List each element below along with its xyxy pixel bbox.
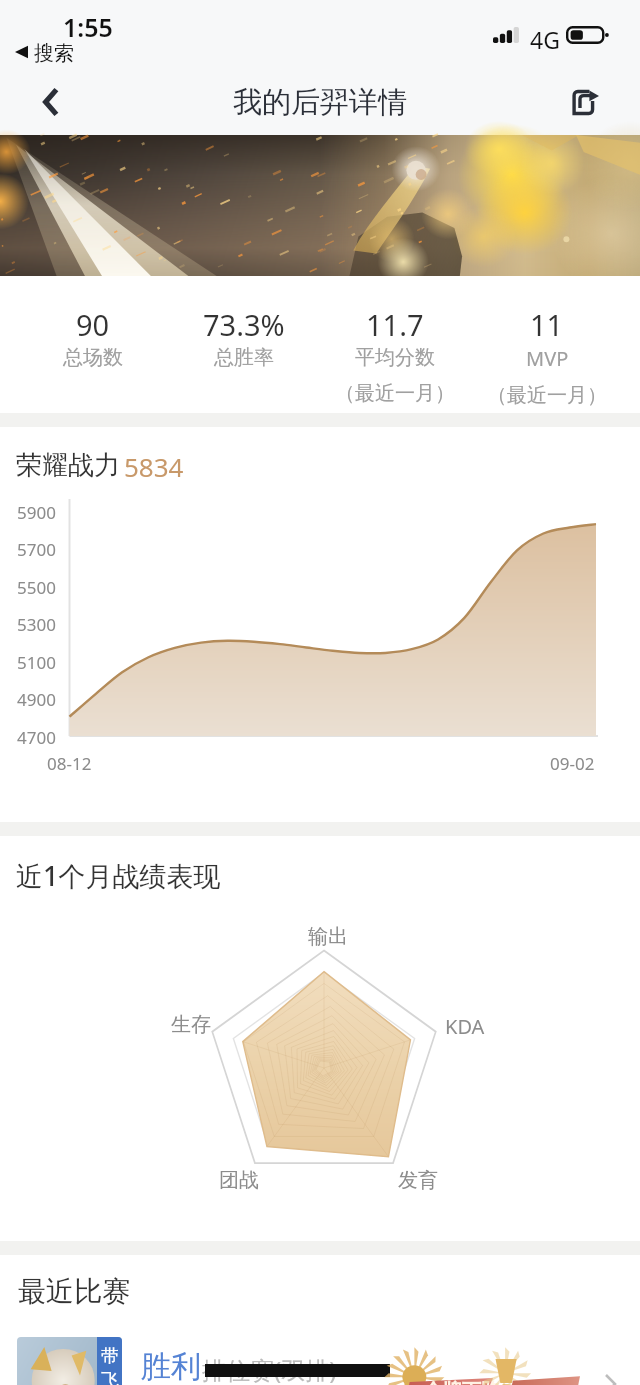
staticText: （最近一月） — [335, 381, 455, 406]
button[interactable]: Share — [558, 75, 614, 129]
staticText: 发育 — [398, 1168, 438, 1193]
staticText: 胜利 — [141, 1348, 201, 1385]
staticText: 5100 — [17, 651, 56, 674]
staticText: KDA — [445, 1013, 485, 1040]
staticText: 73.3% — [203, 305, 285, 344]
staticText: 5900 — [17, 501, 56, 524]
staticText: 总场数 — [63, 345, 123, 370]
staticText: 排位赛(双排) — [202, 1353, 337, 1385]
staticText: 近1个月战绩表现 — [16, 857, 221, 894]
staticText: 我的后羿详情 — [233, 84, 407, 121]
staticText: 5300 — [17, 613, 56, 636]
staticText: 5500 — [17, 576, 56, 599]
staticText: 生存 — [171, 1012, 211, 1037]
staticText: 团战 — [219, 1168, 259, 1193]
staticText: 平均分数 — [355, 345, 435, 370]
staticText: 5834 — [124, 449, 184, 484]
staticText: 90 — [76, 305, 110, 344]
other: Open match details — [604, 1373, 617, 1385]
staticText: 总胜率 — [214, 345, 274, 370]
button[interactable]: 11.7 — [319, 276, 471, 413]
staticText: MVP — [524, 1378, 569, 1385]
staticText: 金牌下路 — [424, 1379, 500, 1385]
button[interactable]: 73.3% — [168, 276, 319, 413]
staticText: MVP — [526, 345, 569, 372]
staticText: 11.7 — [366, 305, 424, 344]
button[interactable]: 带 飞 — [0, 1337, 640, 1385]
staticText: 带 飞 — [101, 1345, 119, 1385]
staticText: 11 — [530, 305, 564, 344]
staticText: 4700 — [17, 726, 56, 749]
button[interactable]: 90 — [17, 276, 168, 413]
staticText: 4G — [530, 24, 560, 55]
staticText: 搜索 — [34, 41, 74, 66]
staticText: 5700 — [17, 538, 56, 561]
staticText: （最近一月） — [487, 383, 607, 408]
staticText: 09-02 — [550, 752, 595, 775]
staticText: 1:55 — [63, 10, 113, 44]
button[interactable]: Back — [22, 74, 80, 130]
staticText: 08-12 — [47, 752, 92, 775]
staticText: 4900 — [17, 688, 56, 711]
staticText: 输出 — [308, 924, 348, 949]
staticText: 荣耀战力 — [16, 449, 120, 482]
staticText: 最近比赛 — [18, 1274, 130, 1309]
button[interactable]: 11 — [471, 276, 623, 413]
